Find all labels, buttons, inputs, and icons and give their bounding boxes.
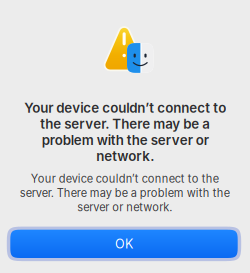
staticText: Your device couldn’t connect to the serv… [24, 100, 226, 164]
staticText: Your device couldn’t connect to the serv… [19, 172, 229, 214]
button[interactable]: OK [7, 227, 241, 261]
staticText: OK [115, 236, 133, 251]
